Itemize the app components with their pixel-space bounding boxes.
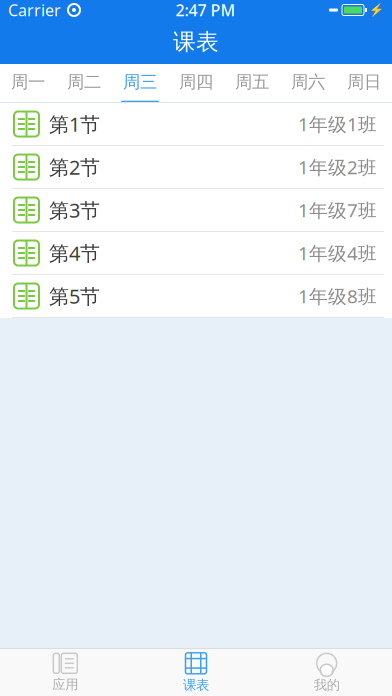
button[interactable]: 周二 [56, 64, 112, 102]
staticText: 应用 [52, 676, 78, 693]
button[interactable]: 周一 [0, 64, 56, 102]
staticText: 1年级7班 [298, 198, 377, 222]
staticText: 我的 [314, 677, 340, 693]
staticText: 课表 [183, 677, 209, 693]
staticText: Carrier [8, 0, 61, 21]
button[interactable]: 课表 [131, 649, 261, 696]
button[interactable]: 应用 [0, 649, 131, 696]
staticText: 第1节 [49, 111, 100, 137]
staticText: 课表 [173, 28, 219, 56]
button[interactable]: 第4节 [0, 232, 392, 275]
button[interactable]: 我的 [261, 649, 392, 696]
button[interactable]: 周日 [336, 64, 392, 102]
staticText: 1年级1班 [298, 112, 377, 136]
button[interactable]: 周五 [224, 64, 280, 102]
staticText: 1年级2班 [298, 155, 377, 179]
staticText: 周五 [235, 71, 269, 93]
button[interactable]: 周四 [168, 64, 224, 102]
staticText: ⚡ [369, 3, 384, 17]
button[interactable]: 第2节 [0, 146, 392, 189]
staticText: 第4节 [49, 240, 100, 266]
staticText: 1年级4班 [298, 241, 377, 265]
staticText: 周六 [291, 71, 325, 93]
staticText: 周日 [347, 71, 381, 93]
button[interactable]: 第5节 [0, 275, 392, 318]
button[interactable]: 周三 [112, 64, 168, 102]
staticText: 第3节 [49, 197, 100, 223]
staticText: 周四 [179, 71, 213, 93]
button[interactable]: 第3节 [0, 189, 392, 232]
staticText: 周二 [67, 71, 101, 93]
staticText: 第2节 [49, 154, 100, 180]
staticText: 第5节 [49, 283, 100, 309]
staticText: 周一 [11, 71, 45, 93]
button[interactable]: 周六 [280, 64, 336, 102]
staticText: 1年级8班 [298, 284, 377, 308]
button[interactable]: 第1节 [0, 103, 392, 146]
staticText: 周三 [123, 71, 157, 93]
staticText: 2:47 PM [175, 0, 235, 21]
